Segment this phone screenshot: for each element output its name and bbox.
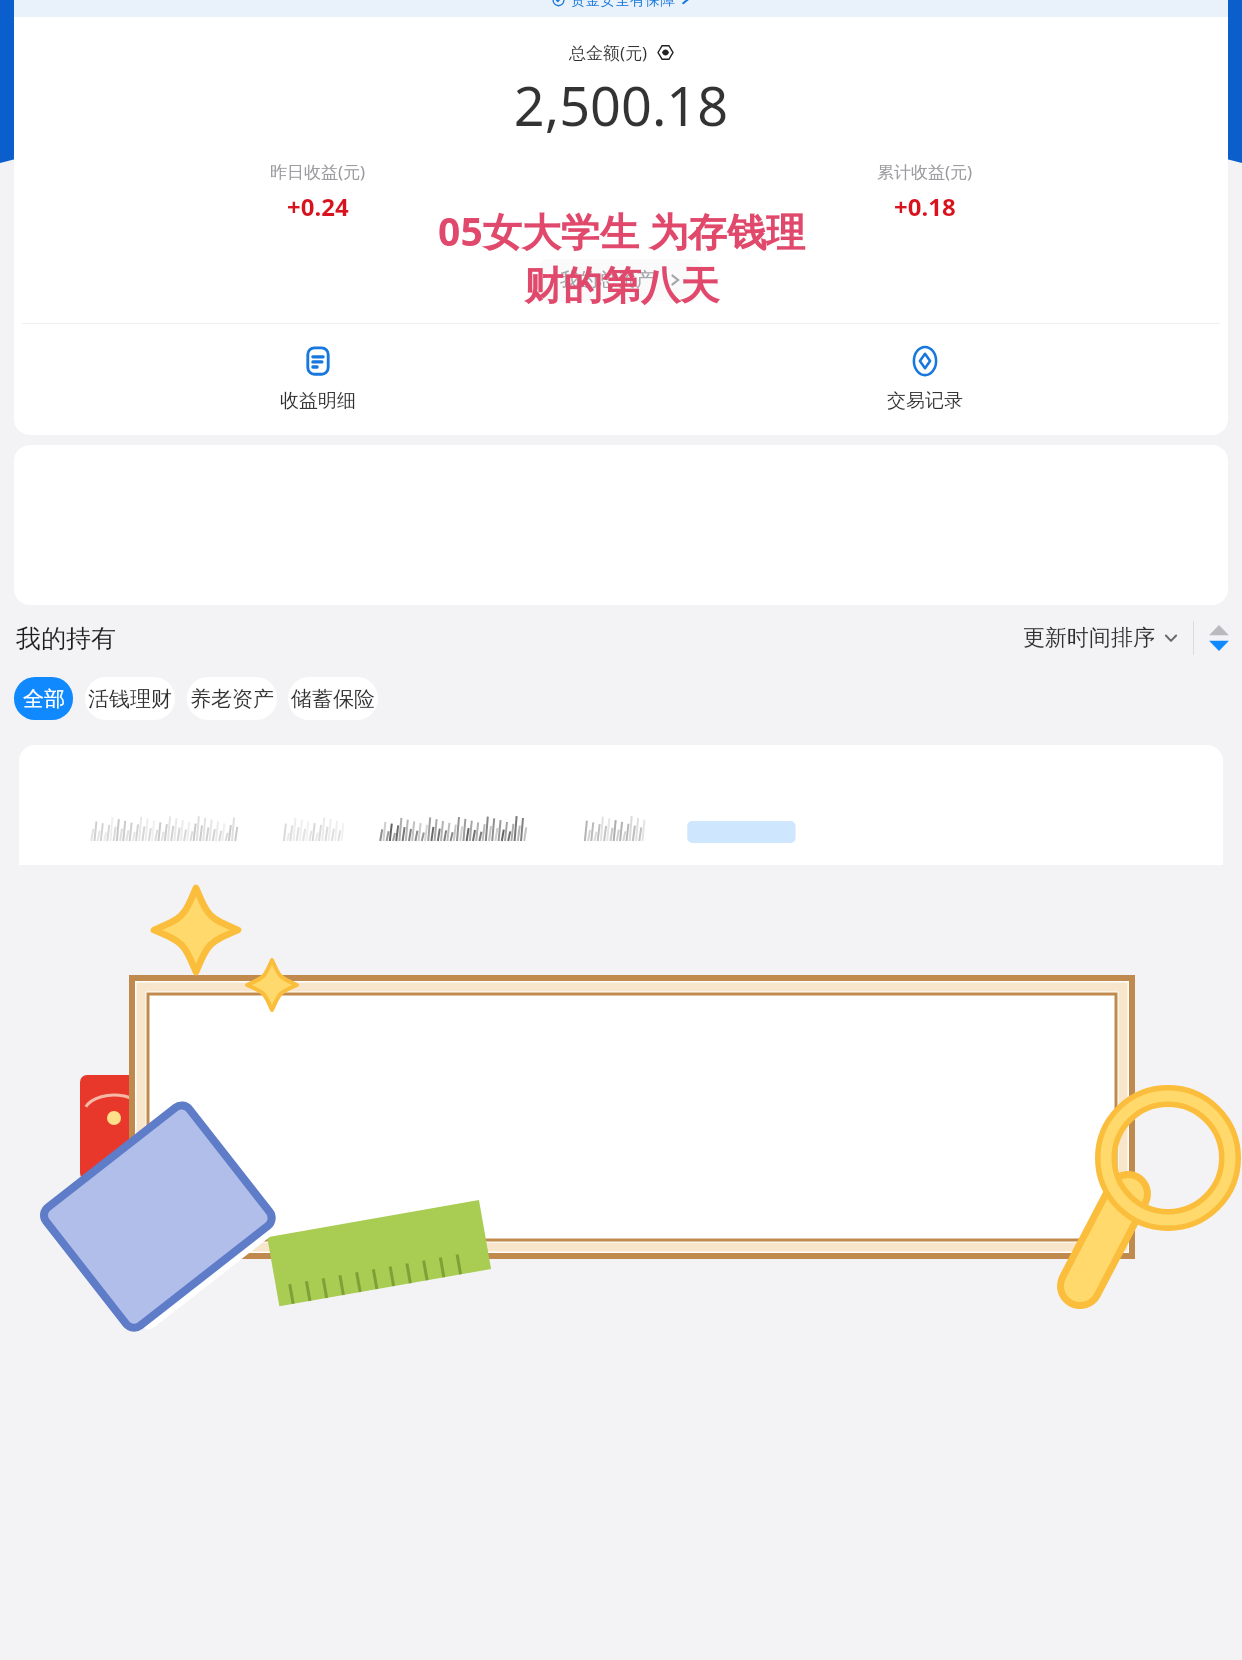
staticText: 收益明细 [280,389,356,413]
staticText: +0.24 [287,190,349,223]
button[interactable]: 储蓄保险 [288,677,378,720]
button[interactable]: 交易记录 [621,346,1228,413]
staticText: 昨日收益(元) [270,160,366,183]
staticText: 2,500.18 [14,68,1228,142]
button[interactable]: 总金额(元) [14,41,1228,64]
button[interactable]: 活钱理财 [85,677,175,720]
staticText: 我的持有 [16,623,116,654]
staticText: 资金安全有保障 [570,0,675,8]
other: 隐藏金额 [657,44,674,61]
button[interactable]: 我的总资产 [539,259,703,301]
button[interactable]: 收益明细 [14,346,621,413]
button[interactable]: 全部 [14,677,73,720]
staticText: 养老资产 [190,686,274,712]
button[interactable]: 资金安全有保障 [14,0,1228,17]
button[interactable]: 昨日收益(元) [14,160,621,223]
staticText: 活钱理财 [88,686,172,712]
staticText: 财的第八天 [524,261,719,310]
staticText: 交易记录 [887,389,963,413]
staticText: 储蓄保险 [291,686,375,712]
staticText: 累计收益(元) [877,160,973,183]
button[interactable]: 累计收益(元) [621,160,1228,223]
button[interactable] [19,745,1223,865]
staticText: +0.18 [894,190,956,223]
button[interactable]: 排序 [1208,621,1230,655]
staticText: 更新时间排序 [1023,624,1155,652]
staticText: 全部 [23,686,65,712]
staticText: 总金额(元) [569,41,648,64]
button[interactable]: 养老资产 [187,677,277,720]
staticText: 我的总资产 [560,268,655,292]
button[interactable]: 更新时间排序 [1023,624,1179,652]
staticText: 05女大学生 为存钱理 [438,204,805,257]
